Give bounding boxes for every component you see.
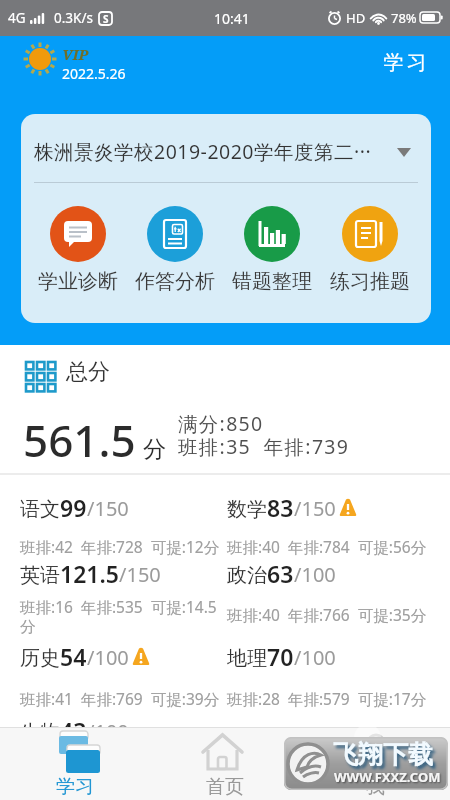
button[interactable]: 地理 xyxy=(227,641,336,672)
button[interactable]: 学习 xyxy=(382,50,428,75)
button[interactable]: 飞翔下载 xyxy=(284,737,448,790)
button[interactable]: 生物 xyxy=(20,715,129,746)
staticText: /150 xyxy=(119,561,161,588)
staticText: 作答分析 xyxy=(135,269,215,294)
staticText: 首页 xyxy=(206,775,244,799)
staticText: 地理 xyxy=(227,646,267,671)
staticText: 学习 xyxy=(56,775,94,799)
staticText: 班排:16 年排:535 可提:14.5 xyxy=(20,596,217,617)
button[interactable]: 语文 xyxy=(20,492,129,523)
staticText: 英语 xyxy=(20,563,60,588)
button[interactable]: 我 xyxy=(300,728,450,800)
staticText: 株洲景炎学校2019-2020学年度第二··· xyxy=(34,138,397,165)
staticText: /100 xyxy=(87,644,129,671)
staticText: 学业诊断 xyxy=(38,269,118,294)
staticText: 飞翔下载 xyxy=(333,739,433,770)
staticText: 我 xyxy=(366,775,385,799)
button[interactable]: 错题整理 xyxy=(223,206,321,294)
staticText: /100 xyxy=(87,718,129,745)
staticText: 数学 xyxy=(227,497,267,522)
staticText: 121.5 xyxy=(60,558,119,589)
staticText: 78% xyxy=(391,9,417,27)
staticText: 54 xyxy=(60,641,87,672)
staticText: 4G xyxy=(8,9,26,27)
button[interactable]: 学习 xyxy=(0,728,150,800)
staticText: 错题整理 xyxy=(232,269,312,294)
button[interactable]: 政治 xyxy=(227,558,336,589)
staticText: /150 xyxy=(294,495,336,522)
staticText: 63 xyxy=(267,558,294,589)
staticText: 历史 xyxy=(20,646,60,671)
button[interactable]: 练习推题 xyxy=(321,206,419,294)
staticText: HD xyxy=(346,9,366,27)
staticText: 10:41 xyxy=(214,9,250,28)
staticText: S xyxy=(103,12,109,26)
staticText: VIP xyxy=(62,44,89,64)
staticText: 561.5 xyxy=(23,410,136,470)
staticText: 班排:42 年排:728 可提:12分 xyxy=(20,536,220,557)
button[interactable]: 数学 xyxy=(227,492,357,523)
staticText: 生物 xyxy=(20,720,60,745)
button[interactable]: 英语 xyxy=(20,558,161,589)
staticText: 班排:40 年排:766 可提:35分 xyxy=(227,604,427,625)
staticText: 99 xyxy=(60,492,87,523)
button[interactable]: 株洲景炎学校2019-2020学年度第二··· xyxy=(34,138,411,165)
staticText: 政治 xyxy=(227,563,267,588)
staticText: 0.3K/s xyxy=(54,9,93,27)
button[interactable]: 历史 xyxy=(20,641,150,672)
staticText: 2022.5.26 xyxy=(62,64,126,83)
staticText: 分 xyxy=(20,617,36,637)
staticText: 语文 xyxy=(20,497,60,522)
staticText: 83 xyxy=(267,492,294,523)
staticText: 总分 xyxy=(66,358,110,386)
staticText: /100 xyxy=(294,644,336,671)
staticText: 班排:28 年排:579 可提:17分 xyxy=(227,688,427,709)
staticText: 70 xyxy=(267,641,294,672)
staticText: 班排:40 年排:784 可提:56分 xyxy=(227,536,427,557)
button[interactable]: 作答分析 xyxy=(126,206,223,294)
button[interactable]: 首页 xyxy=(150,728,300,800)
staticText: 分 xyxy=(143,435,166,464)
staticText: 满分:850 xyxy=(178,410,264,437)
staticText: 班排:35 年排:739 xyxy=(178,433,350,460)
staticText: /150 xyxy=(87,495,129,522)
staticText: 班排:41 年排:769 可提:39分 xyxy=(20,688,220,709)
staticText: 练习推题 xyxy=(330,269,410,294)
staticText: 43 xyxy=(60,715,87,746)
staticText: WWW.FXXZ.COM xyxy=(334,768,441,786)
button[interactable]: 学业诊断 xyxy=(29,206,126,294)
staticText: /100 xyxy=(294,561,336,588)
